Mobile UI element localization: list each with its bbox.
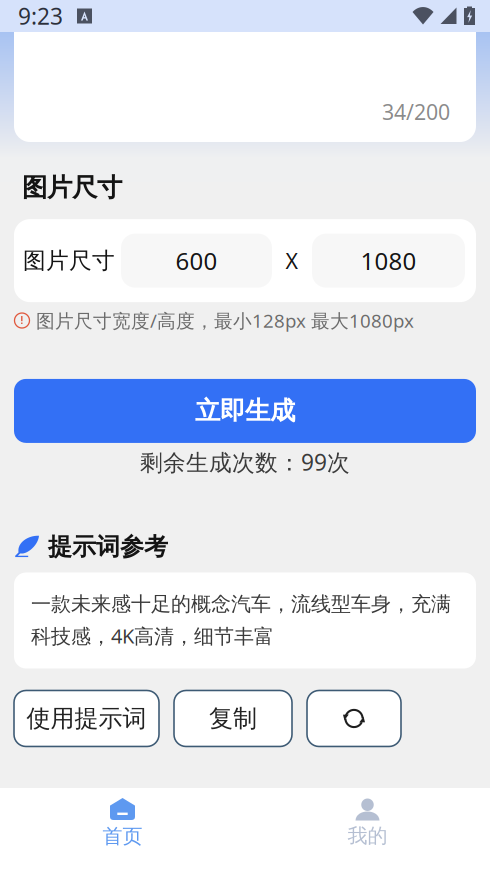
staticText: 剩余生成次数：99次 xyxy=(140,447,350,477)
staticText: 科技感，4K高清，细节丰富 xyxy=(31,622,274,649)
button[interactable]: 使用提示词 xyxy=(14,690,159,746)
staticText: 首页 xyxy=(102,824,142,849)
staticText: 1080 xyxy=(360,245,416,277)
staticText: 图片尺寸 xyxy=(23,247,115,274)
button[interactable]: 复制 xyxy=(174,690,292,746)
button[interactable]: 换一批 xyxy=(307,690,401,746)
staticText: X xyxy=(285,246,298,275)
button[interactable]: 我的 xyxy=(245,798,490,848)
staticText: 复制 xyxy=(209,704,257,733)
staticText: 图片尺寸 xyxy=(22,172,122,203)
staticText: 34/200 xyxy=(382,98,450,126)
staticText: 600 xyxy=(175,245,217,277)
staticText: 图片尺寸宽度/高度，最小128px 最大1080px xyxy=(36,308,414,333)
staticText: 9:23 xyxy=(18,1,63,31)
staticText: 一款未来感十足的概念汽车，流线型车身，充满 xyxy=(31,592,451,616)
button[interactable]: 首页 xyxy=(0,798,245,849)
staticText: 立即生成 xyxy=(195,395,295,426)
staticText: 我的 xyxy=(347,823,387,848)
button[interactable]: 立即生成 xyxy=(14,379,476,443)
staticText: 使用提示词 xyxy=(26,704,146,733)
staticText: 提示词参考 xyxy=(48,532,168,561)
